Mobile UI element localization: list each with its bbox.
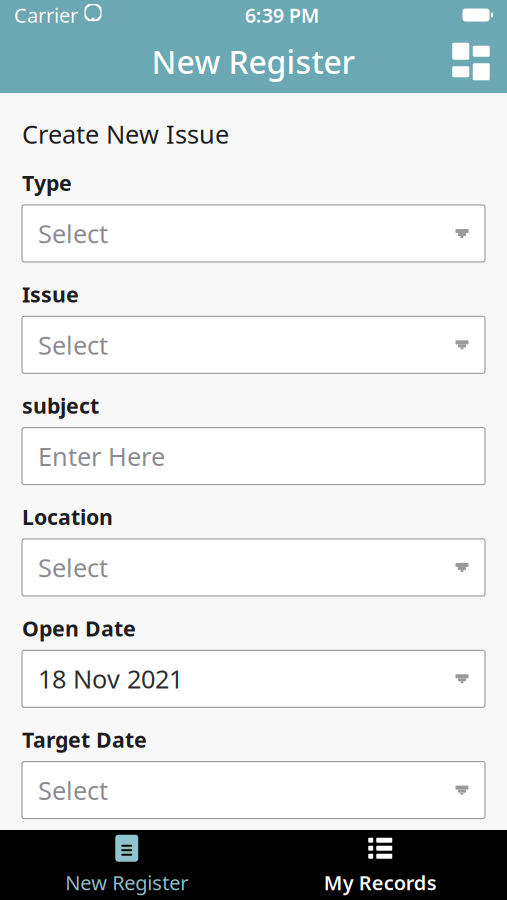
staticText: Select [38, 551, 108, 584]
staticText: 6:39 PM [245, 2, 320, 28]
staticText: Type [22, 169, 72, 197]
button[interactable]: New Register [0, 830, 253, 900]
staticText: subject [22, 391, 99, 420]
staticText: Target Date [22, 725, 147, 754]
button[interactable]: Select [22, 316, 485, 373]
staticText: Location [22, 503, 113, 531]
staticText: Enter Here [38, 439, 165, 473]
button[interactable]: My Records [253, 830, 507, 900]
button[interactable]: Select [22, 539, 485, 596]
staticText: My Records [324, 869, 437, 896]
staticText: New Register [151, 40, 355, 83]
button[interactable]: Dashboard [449, 39, 493, 83]
staticText: New Register [65, 869, 188, 896]
staticText: Select [38, 773, 108, 807]
staticText: Select [38, 217, 108, 250]
button[interactable]: Select [22, 762, 485, 819]
button[interactable]: 18 Nov 2021 [22, 650, 485, 707]
staticText: Create New Issue [22, 117, 229, 151]
staticText: Select [38, 328, 108, 362]
staticText: Issue [22, 280, 79, 308]
staticText: Carrier [14, 2, 78, 28]
staticText: Open Date [22, 614, 136, 642]
staticText: 18 Nov 2021 [38, 662, 183, 696]
button[interactable]: Add attachment [22, 873, 107, 900]
staticText: Attachment [22, 837, 150, 865]
button[interactable]: Enter Here [22, 428, 485, 485]
button[interactable]: Select [22, 205, 485, 262]
